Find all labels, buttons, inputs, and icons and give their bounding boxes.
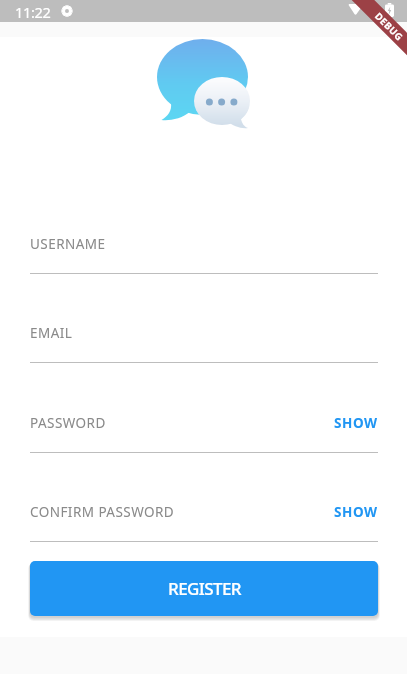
staticText: CONFIRM PASSWORD [30, 503, 175, 519]
staticText: REGISTER [168, 577, 241, 600]
other: Settings [61, 5, 73, 17]
staticText: 11:22 [15, 2, 51, 22]
staticText: PASSWORD [30, 414, 106, 430]
staticText: EMAIL [30, 324, 73, 340]
staticText: SHOW [334, 414, 378, 430]
button[interactable]: SHOW [334, 414, 378, 430]
staticText: SHOW [334, 503, 378, 519]
button[interactable]: REGISTER [30, 561, 378, 616]
button[interactable]: SHOW [334, 503, 378, 519]
staticText: DEBUG [372, 10, 406, 44]
staticText: USERNAME [30, 235, 106, 251]
